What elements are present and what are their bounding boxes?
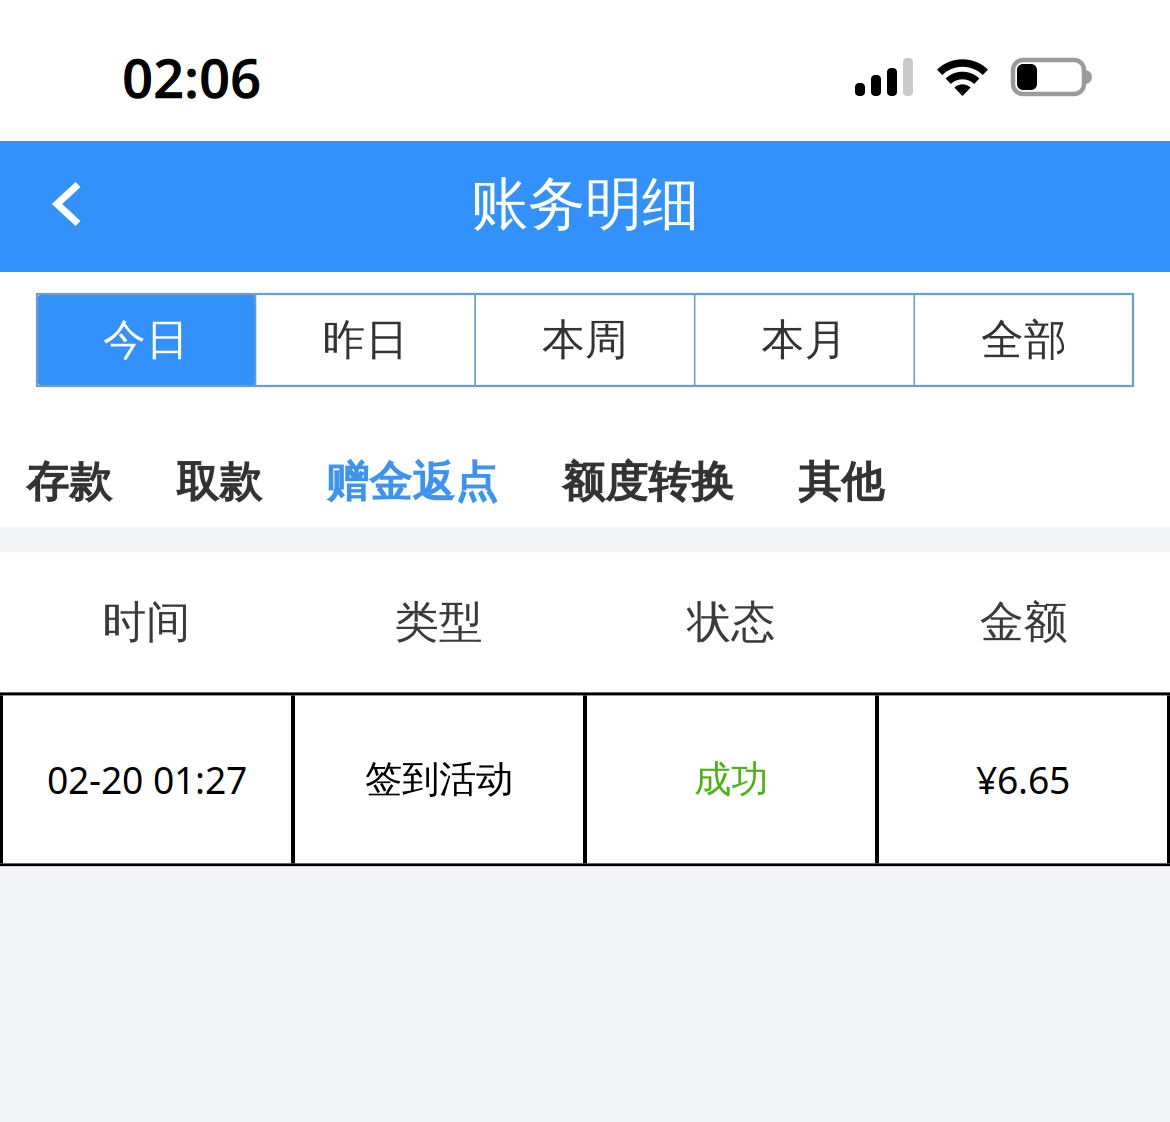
staticText: 金额 [980, 595, 1068, 649]
staticText: 今日 [103, 314, 189, 366]
button[interactable]: 取款 [176, 456, 262, 508]
button[interactable]: 本周 [476, 294, 694, 386]
button[interactable]: 其他 [798, 456, 884, 508]
staticText: 本月 [762, 314, 848, 366]
staticText: 全部 [981, 314, 1067, 366]
button[interactable]: 昨日 [257, 294, 474, 386]
staticText: 额度转换 [562, 456, 734, 508]
button[interactable]: 返回 [0, 141, 131, 272]
staticText: 成功 [694, 756, 768, 802]
button[interactable]: 额度转换 [562, 456, 734, 508]
button[interactable]: 今日 [37, 294, 255, 386]
staticText: 昨日 [322, 314, 408, 366]
staticText: ¥6.65 [976, 755, 1070, 804]
staticText: 状态 [687, 595, 775, 649]
button[interactable]: 存款 [26, 456, 112, 508]
staticText: 类型 [395, 595, 483, 649]
staticText: 账务明细 [471, 169, 699, 240]
staticText: 取款 [176, 456, 262, 508]
staticText: 02-20 01:27 [47, 755, 247, 804]
staticText: 赠金返点 [326, 456, 498, 508]
staticText: 其他 [798, 456, 884, 508]
staticText: 时间 [102, 595, 190, 649]
staticText: 存款 [26, 456, 112, 508]
button[interactable]: 全部 [915, 294, 1133, 386]
staticText: 02:06 [122, 41, 261, 113]
button[interactable]: 赠金返点 [326, 456, 498, 508]
staticText: 本周 [542, 314, 628, 366]
staticText: 签到活动 [365, 756, 513, 802]
button[interactable]: 本月 [696, 294, 913, 386]
